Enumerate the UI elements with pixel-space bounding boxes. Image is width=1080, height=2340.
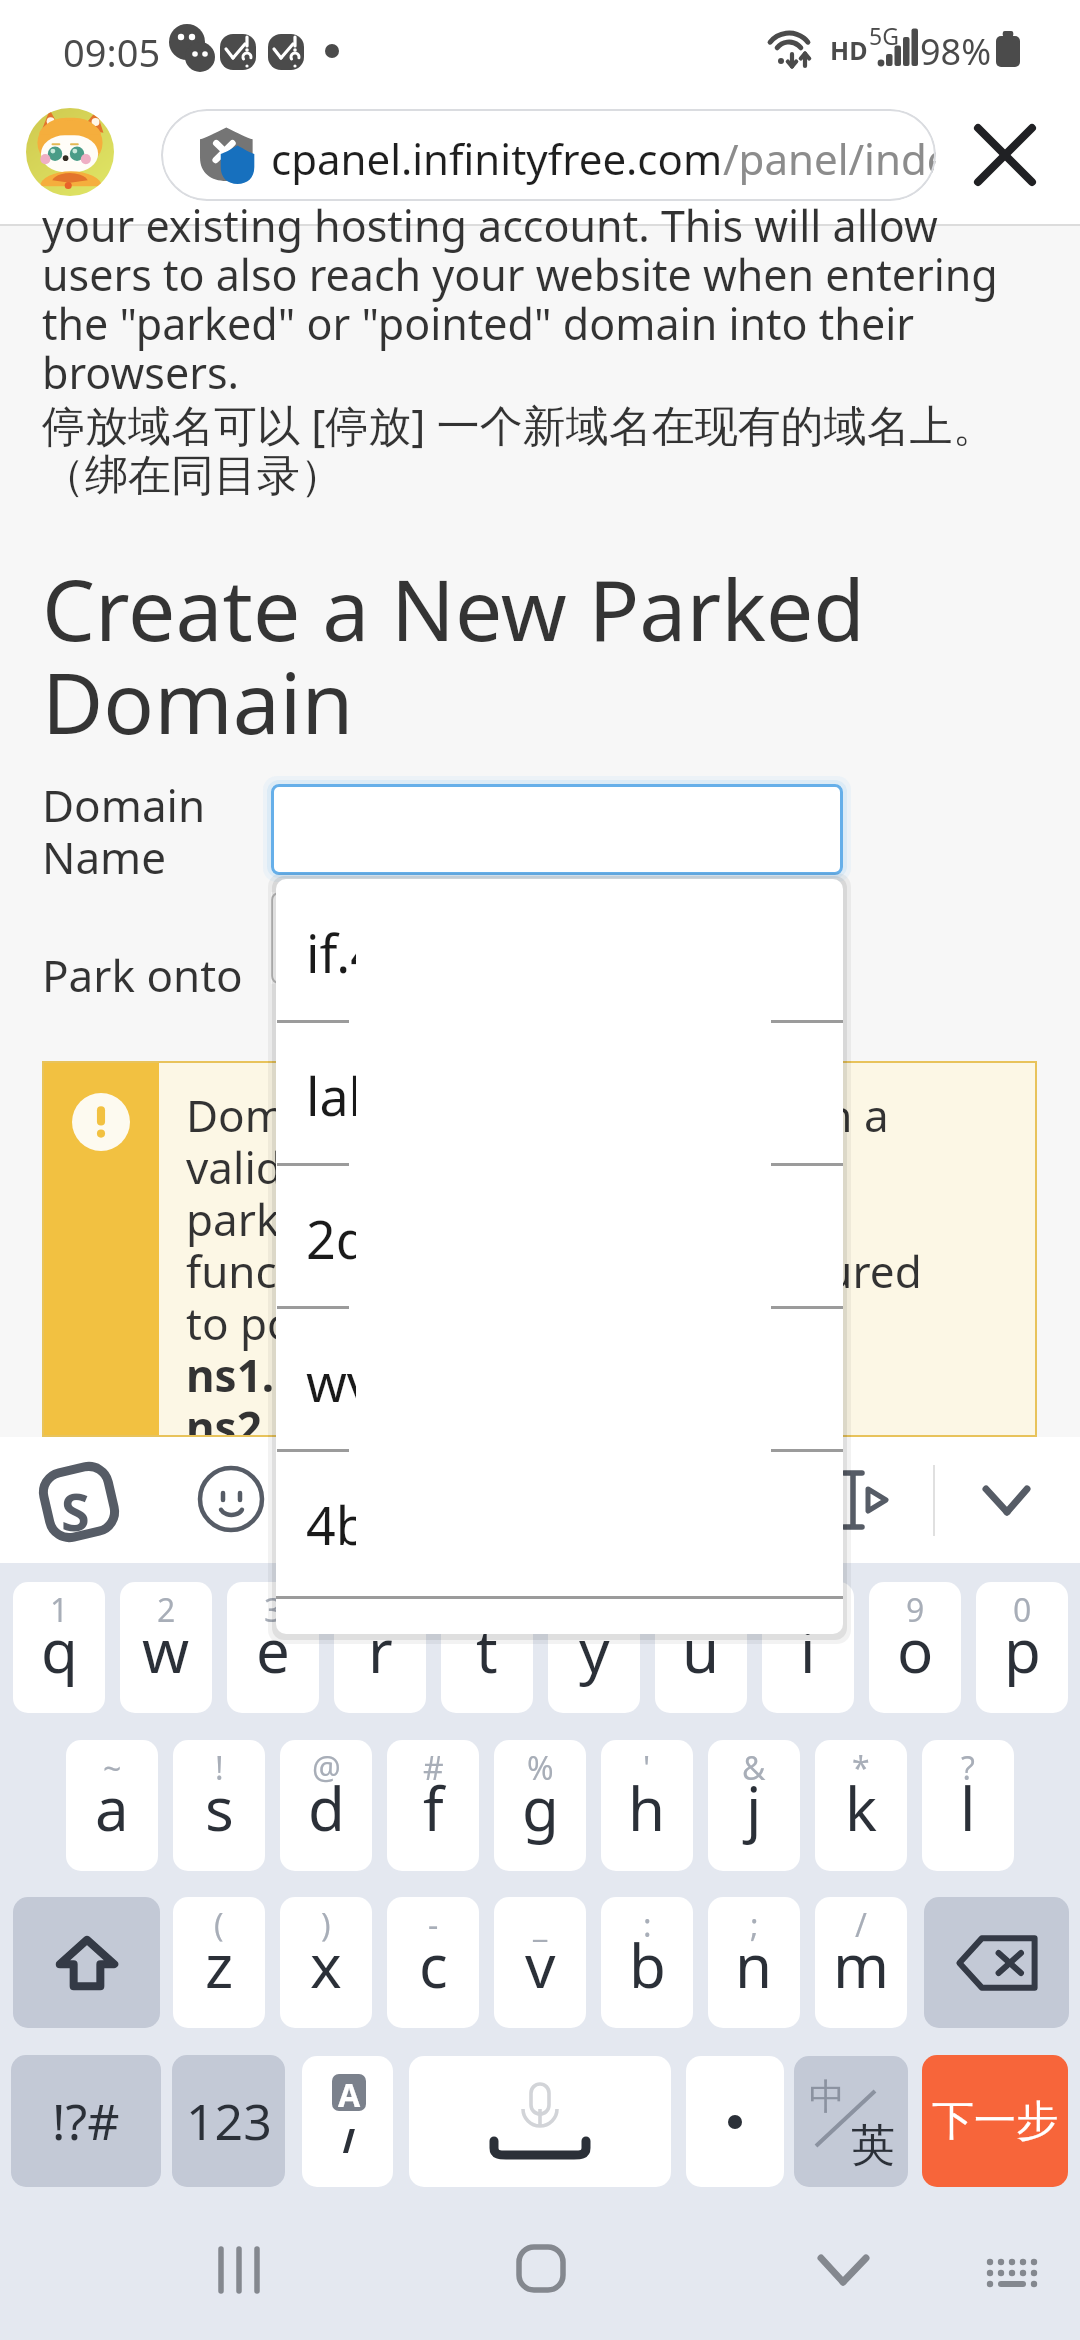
staticText: m — [833, 1924, 890, 2006]
button[interactable]: 3 — [227, 1582, 319, 1713]
button[interactable]: Hide keyboard — [798, 2221, 888, 2313]
button[interactable]: ? — [922, 1740, 1014, 1871]
staticText: % — [527, 1746, 554, 1790]
staticText: ' — [643, 1746, 651, 1790]
button[interactable]: 8 — [762, 1582, 854, 1713]
button[interactable]: lab@x — [276, 1022, 843, 1165]
button[interactable]: Recents — [196, 2221, 282, 2313]
staticText: @ — [312, 1746, 341, 1790]
staticText: w — [142, 1609, 190, 1691]
button[interactable]: Move cursor — [830, 1457, 910, 1543]
button[interactable]: * — [815, 1740, 907, 1871]
staticText: * — [852, 1746, 870, 1790]
staticText: ! — [215, 1746, 224, 1790]
staticText: g — [522, 1767, 559, 1849]
staticText: # — [423, 1746, 444, 1790]
staticText: y — [579, 1609, 610, 1691]
staticText: wv9@z — [306, 1346, 356, 1406]
button[interactable]: Backspace — [924, 1897, 1069, 2028]
button[interactable]: 6 — [548, 1582, 640, 1713]
staticText: ( — [214, 1903, 224, 1947]
staticText: 7 — [692, 1588, 711, 1632]
staticText: 123 — [186, 2087, 272, 2155]
button[interactable]: @ — [280, 1740, 372, 1871]
button[interactable]: / — [815, 1897, 907, 2028]
staticText: o — [897, 1609, 934, 1691]
button[interactable]: Hide keyboard — [970, 1473, 1044, 1523]
staticText: i — [800, 1609, 816, 1691]
button[interactable]: & — [708, 1740, 800, 1871]
staticText: 中 — [809, 2074, 845, 2119]
staticText: : — [643, 1903, 652, 1947]
button[interactable]: 5 — [441, 1582, 533, 1713]
button[interactable]: Comma — [302, 2056, 393, 2187]
button[interactable]: 下一步 — [922, 2055, 1068, 2187]
button[interactable]: Shift — [13, 1897, 160, 2028]
button[interactable]: 4b2@q — [276, 1451, 843, 1594]
staticText: u — [682, 1609, 720, 1691]
button[interactable]: !?# — [11, 2055, 161, 2187]
button[interactable]: : — [601, 1897, 693, 2028]
button[interactable]: 123 — [172, 2055, 285, 2187]
button[interactable]: Profile — [26, 108, 114, 196]
staticText: a — [95, 1767, 129, 1849]
staticText: ; — [750, 1903, 759, 1947]
button[interactable]: ' — [601, 1740, 693, 1871]
button[interactable]: ! — [173, 1740, 265, 1871]
staticText: n — [735, 1924, 773, 2006]
button[interactable]: ( — [173, 1897, 265, 2028]
staticText: p — [1004, 1609, 1041, 1691]
staticText: HD — [830, 33, 868, 67]
staticText: d — [308, 1767, 345, 1849]
button[interactable]: Emoji — [198, 1467, 264, 1533]
staticText: - — [428, 1903, 439, 1947]
button[interactable]: Period — [686, 2056, 784, 2187]
staticText: f — [423, 1767, 444, 1849]
button[interactable]: if.4@s — [276, 879, 843, 1022]
button[interactable]: Close — [960, 110, 1050, 200]
staticText: k — [845, 1767, 878, 1849]
staticText: j — [746, 1767, 762, 1849]
button[interactable]: Home — [496, 2221, 586, 2313]
staticText: 98% — [920, 27, 992, 76]
staticText: 4b2@q — [306, 1489, 356, 1549]
button[interactable]: ) — [280, 1897, 372, 2028]
button[interactable]: # — [387, 1740, 479, 1871]
staticText: t — [476, 1609, 498, 1691]
staticText: if.4@s — [306, 917, 356, 977]
staticText: Domain must be registered with a valid r… — [186, 1085, 928, 1353]
staticText: Create a New Parked Domain — [42, 551, 922, 759]
staticText: 8 — [799, 1588, 818, 1632]
button[interactable]: 9 — [869, 1582, 961, 1713]
staticText: 0 — [1013, 1588, 1032, 1632]
button[interactable]: % — [494, 1740, 586, 1871]
button[interactable]: Switch keyboard — [945, 2221, 1055, 2313]
staticText: 停放域名可以 [停放] 一个新域名在现有的域名上。 （绑在同目录） — [42, 395, 1042, 502]
staticText: ? — [961, 1746, 975, 1790]
staticText: 2 — [157, 1588, 176, 1632]
button[interactable]: 2 — [120, 1582, 212, 1713]
button[interactable]: cpanel.infinityfree.com — [161, 109, 936, 201]
button[interactable] — [271, 784, 843, 875]
staticText: _ — [533, 1903, 548, 1947]
button[interactable]: 4 — [334, 1582, 426, 1713]
button[interactable]: 1 — [13, 1582, 105, 1713]
staticText: 4 — [371, 1588, 390, 1632]
button[interactable]: ~ — [66, 1740, 158, 1871]
staticText: ) — [321, 1903, 331, 1947]
button[interactable]: 2g8@y — [276, 1165, 843, 1308]
button[interactable]: _ — [494, 1897, 586, 2028]
staticText: & — [742, 1746, 766, 1790]
button[interactable]: Space — [409, 2056, 671, 2187]
button[interactable]: Language switch — [794, 2056, 908, 2187]
staticText: 6 — [585, 1588, 604, 1632]
staticText: S — [61, 1475, 90, 1546]
button[interactable]: 7 — [655, 1582, 747, 1713]
button[interactable]: wv9@z — [276, 1308, 843, 1451]
button[interactable]: ; — [708, 1897, 800, 2028]
staticText: 5 — [478, 1588, 497, 1632]
button[interactable]: - — [387, 1897, 479, 2028]
button[interactable]: Input method — [40, 1463, 118, 1541]
button[interactable]: 0 — [976, 1582, 1068, 1713]
staticText: Domain Name — [42, 775, 206, 887]
